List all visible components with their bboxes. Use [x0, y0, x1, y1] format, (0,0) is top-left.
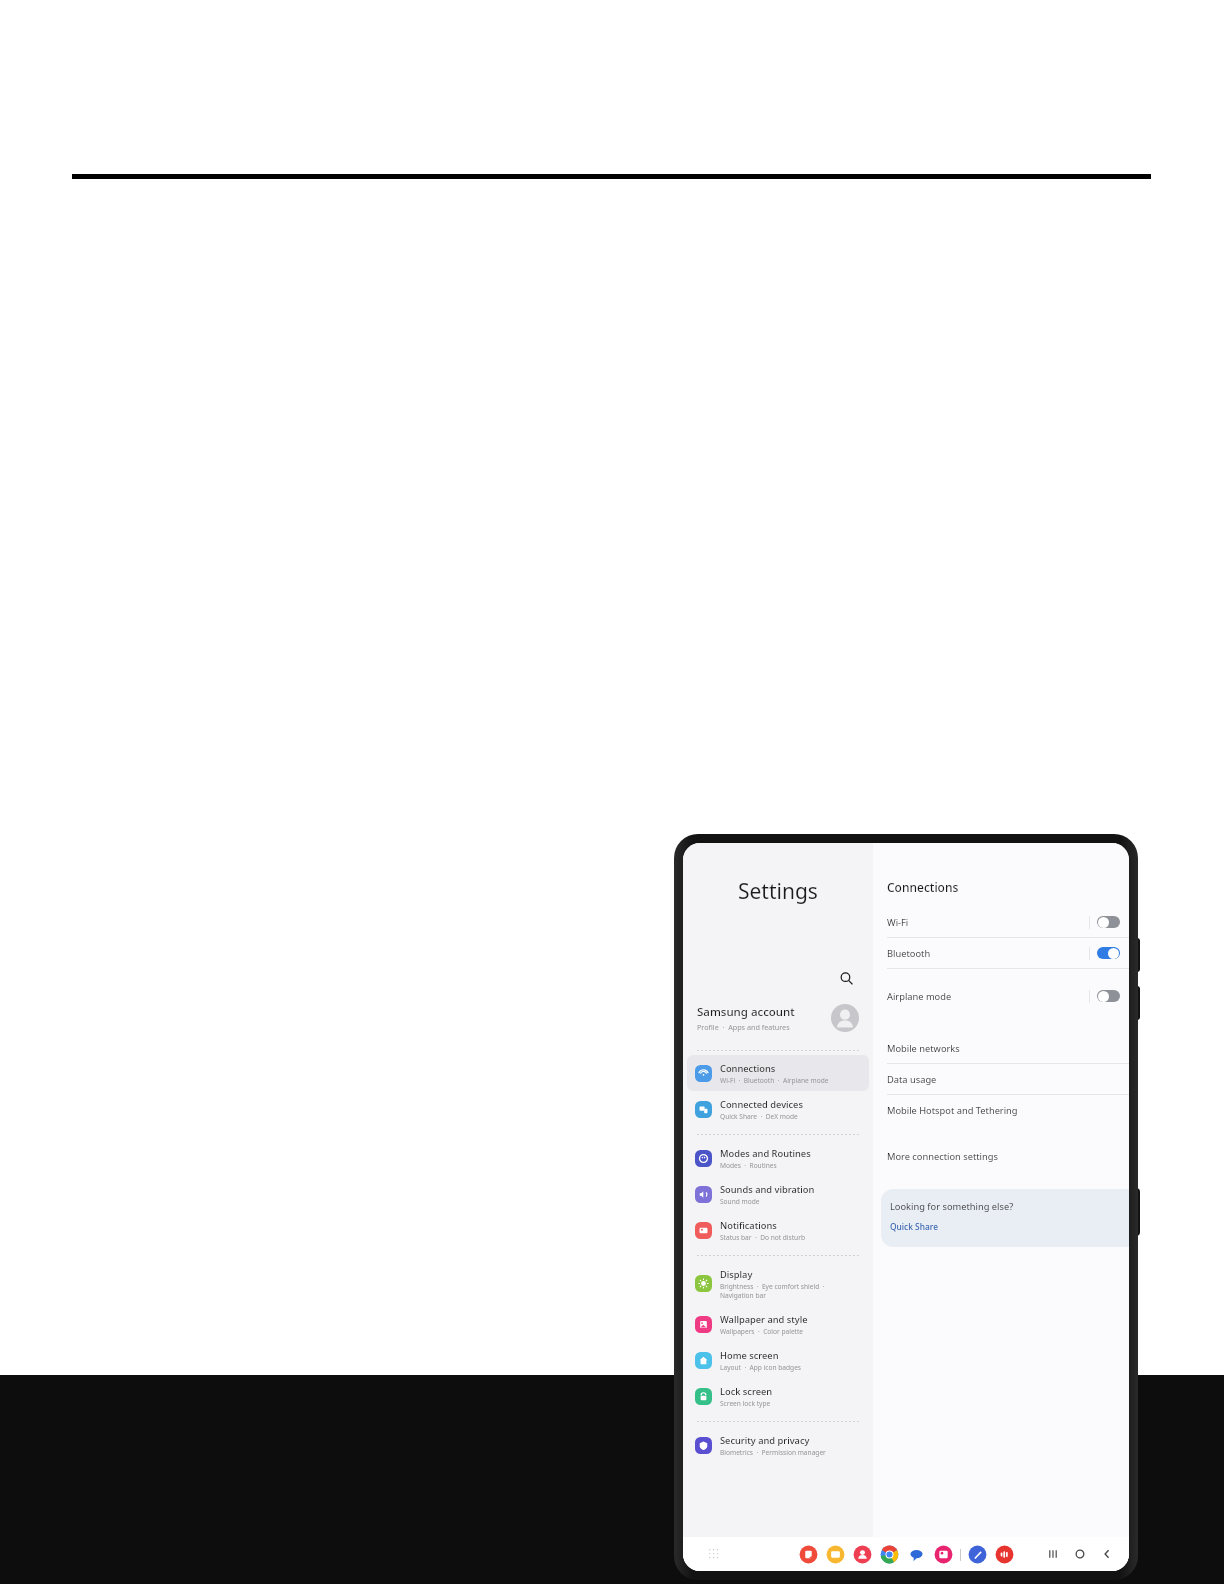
- staticText: Biometrics · Permission manager: [720, 1448, 826, 1457]
- button[interactable]: Display: [687, 1261, 869, 1306]
- staticText: Modes and Routines: [720, 1147, 811, 1160]
- staticText: Lock screen: [720, 1385, 773, 1398]
- staticText: Layout · App icon badges: [720, 1363, 802, 1372]
- staticText: Sound mode: [720, 1197, 760, 1206]
- staticText: Home screen: [720, 1349, 779, 1362]
- button[interactable]: Mobile networks: [873, 1033, 1129, 1063]
- staticText: Wi-Fi · Bluetooth · Airplane mode: [720, 1076, 829, 1085]
- staticText: More connection settings: [887, 1150, 998, 1163]
- button[interactable]: Samsung account: [683, 995, 873, 1041]
- staticText: Wallpaper and style: [720, 1313, 808, 1326]
- button[interactable]: Modes and Routines: [687, 1140, 869, 1176]
- button[interactable]: Connections: [687, 1055, 869, 1091]
- button[interactable]: Notes: [799, 1545, 818, 1564]
- button[interactable]: [1097, 990, 1120, 1002]
- staticText: Looking for something else?: [890, 1200, 1014, 1213]
- staticText: Profile · Apps and features: [697, 1022, 790, 1032]
- button[interactable]: Lock screen: [687, 1378, 869, 1414]
- staticText: Quick Share · DeX mode: [720, 1112, 798, 1121]
- button[interactable]: Recents: [1045, 1546, 1061, 1562]
- button[interactable]: Airplane mode: [873, 981, 1129, 1011]
- button[interactable]: My Files: [826, 1545, 845, 1564]
- staticText: Wi-Fi: [887, 916, 1089, 929]
- staticText: Airplane mode: [887, 990, 1089, 1003]
- staticText: Mobile networks: [887, 1042, 960, 1055]
- staticText: Connections: [720, 1062, 776, 1075]
- staticText: Status bar · Do not disturb: [720, 1233, 805, 1242]
- button[interactable]: Wi-Fi: [873, 907, 1129, 937]
- staticText: Security and privacy: [720, 1434, 810, 1447]
- staticText: Mobile Hotspot and Tethering: [887, 1104, 1018, 1117]
- staticText: Samsung account: [697, 1004, 795, 1020]
- staticText: Notifications: [720, 1219, 777, 1232]
- staticText: Settings: [738, 877, 818, 906]
- button[interactable]: Looking for something else?: [881, 1189, 1129, 1247]
- button[interactable]: Messages: [907, 1545, 926, 1564]
- button[interactable]: Home: [1072, 1546, 1088, 1562]
- button[interactable]: Back: [1099, 1546, 1115, 1562]
- button[interactable]: Music: [995, 1545, 1014, 1564]
- button[interactable]: Gallery: [934, 1545, 953, 1564]
- button[interactable]: Apps: [705, 1545, 723, 1563]
- staticText: Screen lock type: [720, 1399, 771, 1408]
- button[interactable]: [1097, 916, 1120, 928]
- staticText: Brightness · Eye comfort shield · Naviga…: [720, 1282, 825, 1300]
- button[interactable]: Security and privacy: [687, 1427, 869, 1463]
- button[interactable]: Data usage: [873, 1064, 1129, 1094]
- button[interactable]: PENUP: [968, 1545, 987, 1564]
- button[interactable]: More connection settings: [873, 1141, 1129, 1171]
- button[interactable]: Search: [835, 967, 857, 989]
- staticText: Bluetooth: [887, 947, 1089, 960]
- button[interactable]: Wallpaper and style: [687, 1306, 869, 1342]
- button[interactable]: Sounds and vibration: [687, 1176, 869, 1212]
- button[interactable]: Notifications: [687, 1212, 869, 1248]
- staticText: Data usage: [887, 1073, 937, 1086]
- staticText: Connected devices: [720, 1098, 803, 1111]
- button[interactable]: Connected devices: [687, 1091, 869, 1127]
- staticText: Modes · Routines: [720, 1161, 777, 1170]
- staticText: Display: [720, 1268, 753, 1281]
- staticText: Sounds and vibration: [720, 1183, 815, 1196]
- staticText: Connections: [887, 879, 959, 895]
- staticText: Wallpapers · Color palette: [720, 1327, 804, 1336]
- button[interactable]: [1097, 947, 1120, 959]
- button[interactable]: Mobile Hotspot and Tethering: [873, 1095, 1129, 1125]
- staticText: Quick Share: [890, 1221, 938, 1232]
- button[interactable]: Contacts: [853, 1545, 872, 1564]
- button[interactable]: Home screen: [687, 1342, 869, 1378]
- button[interactable]: Bluetooth: [873, 938, 1129, 968]
- button[interactable]: Chrome: [880, 1545, 899, 1564]
